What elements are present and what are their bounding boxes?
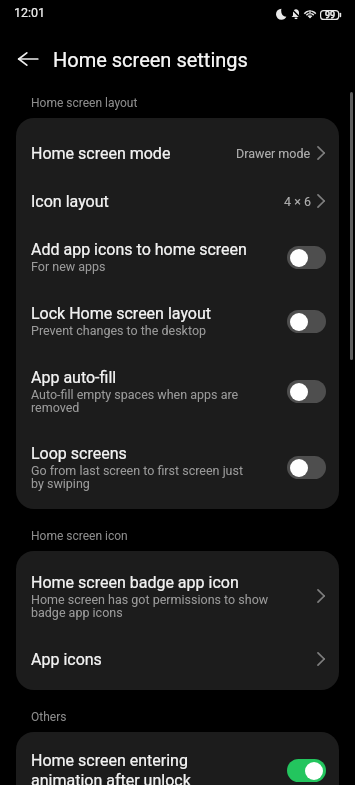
- staticText: App icons: [31, 650, 102, 669]
- staticText: Prevent changes to the desktop: [31, 323, 207, 338]
- staticText: For new apps: [31, 259, 106, 274]
- staticText: Loop screens: [31, 444, 127, 463]
- button[interactable]: Home screen badge app icon: [16, 557, 339, 635]
- staticText: 12:01: [14, 5, 46, 20]
- button[interactable]: Toggle: [287, 246, 326, 269]
- button[interactable]: Toggle: [287, 310, 326, 333]
- staticText: Auto-fill empty spaces when apps are rem…: [31, 387, 249, 415]
- button[interactable]: Lock Home screen layout: [16, 289, 339, 353]
- button[interactable]: Back: [10, 41, 46, 77]
- staticText: Home screen layout: [31, 96, 138, 110]
- staticText: Drawer mode: [236, 146, 311, 161]
- staticText: Icon layout: [31, 192, 109, 211]
- staticText: Home screen entering animation after unl…: [31, 751, 249, 785]
- button[interactable]: Toggle: [287, 759, 326, 782]
- staticText: Home screen settings: [53, 48, 248, 71]
- staticText: Home screen badge app icon: [31, 573, 239, 592]
- staticText: Home screen mode: [31, 144, 171, 163]
- staticText: Home screen has got permissions to show …: [31, 592, 281, 620]
- button[interactable]: App icons: [16, 635, 339, 683]
- button[interactable]: Home screen entering animation after unl…: [16, 738, 339, 785]
- staticText: Home screen icon: [31, 529, 128, 543]
- button[interactable]: Loop screens: [16, 429, 339, 505]
- staticText: 99: [325, 10, 336, 20]
- staticText: 4 × 6: [284, 194, 311, 209]
- staticText: Others: [31, 710, 67, 724]
- button[interactable]: App auto-fill: [16, 353, 339, 429]
- staticText: Lock Home screen layout: [31, 304, 212, 323]
- staticText: App auto-fill: [31, 368, 117, 387]
- staticText: Go from last screen to first screen just…: [31, 463, 249, 491]
- button[interactable]: Toggle: [287, 380, 326, 403]
- staticText: Add app icons to home screen: [31, 240, 247, 259]
- button[interactable]: Add app icons to home screen: [16, 225, 339, 289]
- button[interactable]: Toggle: [287, 456, 326, 479]
- button[interactable]: Home screen mode: [16, 129, 339, 177]
- button[interactable]: Icon layout: [16, 177, 339, 225]
